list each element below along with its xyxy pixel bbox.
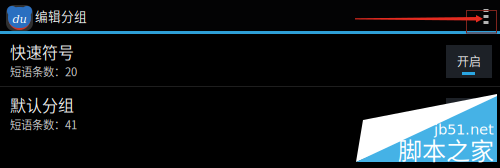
staticText: 默认分组 <box>10 93 74 116</box>
staticText: 编辑分组 <box>35 6 87 25</box>
staticText: 短语条数：41 <box>10 116 77 132</box>
button[interactable]: 开启 <box>446 98 492 131</box>
button[interactable]: More options <box>475 1 497 32</box>
staticText: 开启 <box>457 52 481 70</box>
staticText: 脚本之家 <box>398 132 494 167</box>
staticText: du <box>12 12 26 26</box>
staticText: 短语条数：20 <box>10 63 77 79</box>
button[interactable]: 开启 <box>446 45 492 78</box>
button[interactable]: 默认分组 <box>0 87 500 139</box>
staticText: jb51.net <box>434 121 494 138</box>
button[interactable]: 快速符号 <box>0 34 500 86</box>
staticText: 快速符号 <box>10 40 74 63</box>
staticText: 开启 <box>457 105 481 123</box>
